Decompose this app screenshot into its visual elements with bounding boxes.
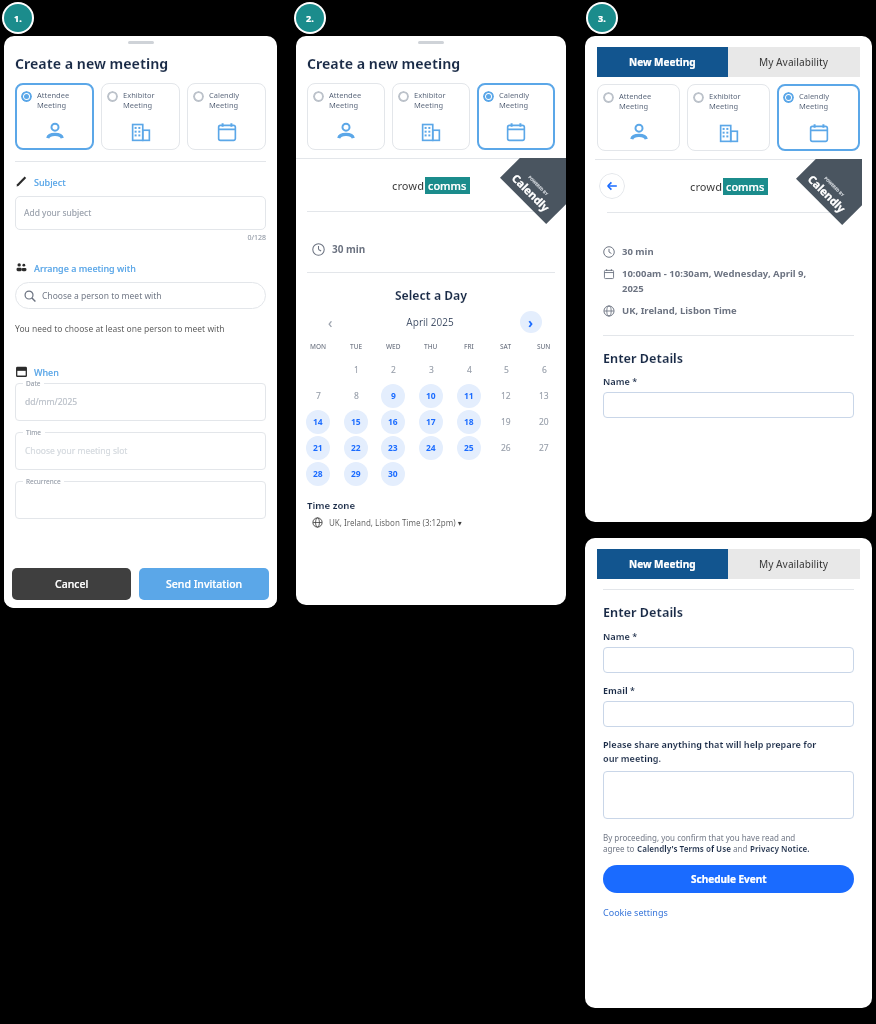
staticText: 23 — [388, 442, 398, 454]
button[interactable]: Attendee — [307, 83, 385, 150]
button[interactable]: Attendee — [15, 83, 94, 150]
button[interactable] — [603, 701, 854, 727]
button[interactable]: Choose a person to meet with — [15, 282, 266, 309]
staticText: Calendly — [805, 171, 849, 216]
button[interactable]: Exhibitor — [101, 83, 180, 150]
button[interactable]: Calendly — [187, 83, 266, 150]
button[interactable]: 24 — [419, 436, 443, 460]
button[interactable]: 1 — [344, 358, 368, 382]
button[interactable]: dd/mm/2025 — [15, 383, 266, 421]
staticText: Choose a person to meet with — [42, 290, 162, 302]
staticText: New Meeting — [629, 557, 696, 571]
staticText: 29 — [351, 468, 361, 480]
button[interactable]: 10 — [419, 384, 443, 408]
button[interactable]: 19 — [494, 410, 518, 434]
button[interactable]: My Availability — [728, 47, 860, 77]
button[interactable]: Calendly — [477, 83, 555, 150]
button[interactable]: 17 — [419, 410, 443, 434]
button[interactable]: 5 — [494, 358, 518, 382]
button[interactable]: 7 — [306, 384, 330, 408]
staticText: Meeting — [209, 100, 239, 110]
button[interactable]: 2 — [381, 358, 405, 382]
button[interactable]: Back — [599, 173, 625, 199]
button[interactable]: 23 — [381, 436, 405, 460]
button[interactable]: 21 — [306, 436, 330, 460]
staticText: 17 — [426, 416, 436, 428]
staticText: Enter Details — [603, 350, 684, 367]
button[interactable]: My Availability — [728, 549, 860, 579]
button[interactable] — [603, 392, 854, 418]
staticText: 13 — [539, 390, 549, 402]
button[interactable]: 8 — [344, 384, 368, 408]
staticText: My Availability — [759, 557, 829, 571]
button[interactable]: 13 — [532, 384, 556, 408]
button[interactable]: Schedule Event — [603, 865, 854, 893]
staticText: and — [731, 843, 750, 854]
button[interactable]: 18 — [457, 410, 481, 434]
button[interactable]: 26 — [494, 436, 518, 460]
staticText: ‹ — [328, 313, 333, 332]
staticText: Date — [26, 379, 41, 388]
button[interactable]: Add your subject — [15, 196, 266, 230]
button[interactable]: 16 — [381, 410, 405, 434]
button[interactable]: 30 — [381, 462, 405, 486]
button[interactable]: 4 — [457, 358, 481, 382]
button[interactable]: 25 — [457, 436, 481, 460]
staticText: Meeting — [619, 101, 649, 111]
button[interactable]: Choose your meeting slot — [15, 432, 266, 470]
button[interactable]: Exhibitor — [392, 83, 470, 150]
staticText: Meeting — [499, 100, 529, 110]
button[interactable]: 28 — [306, 462, 330, 486]
button[interactable] — [603, 647, 854, 673]
button[interactable]: 14 — [306, 410, 330, 434]
button[interactable]: Cookie settings — [603, 906, 668, 918]
button[interactable]: Exhibitor — [687, 84, 770, 151]
staticText: SUN — [537, 342, 551, 351]
staticText: You need to choose at least one person t… — [15, 323, 225, 335]
staticText: dd/mm/2025 — [25, 396, 78, 408]
button[interactable]: New Meeting — [597, 47, 728, 77]
staticText: 19 — [501, 416, 511, 428]
button[interactable]: 20 — [532, 410, 556, 434]
button[interactable]: 11 — [457, 384, 481, 408]
staticText: 18 — [464, 416, 474, 428]
staticText: 2. — [306, 12, 314, 24]
staticText: 24 — [426, 442, 436, 454]
staticText: 4 — [467, 364, 472, 376]
staticText: Choose your meeting slot — [25, 445, 128, 457]
button[interactable]: Cancel — [12, 568, 131, 600]
staticText: comms — [428, 178, 467, 193]
staticText: THU — [424, 342, 438, 351]
staticText: 14 — [313, 416, 323, 428]
staticText: crowd — [392, 178, 425, 193]
button[interactable] — [15, 481, 266, 519]
button[interactable]: Attendee — [597, 84, 680, 151]
button[interactable]: 12 — [494, 384, 518, 408]
staticText: Exhibitor — [123, 90, 155, 100]
button[interactable]: Next month — [520, 311, 542, 333]
button[interactable]: 6 — [532, 358, 556, 382]
button[interactable]: New Meeting — [597, 549, 728, 579]
staticText: 20 — [539, 416, 549, 428]
button[interactable] — [603, 771, 854, 819]
staticText: Please share anything that will help pre… — [603, 738, 817, 765]
staticText: Name * — [603, 375, 638, 387]
button[interactable]: 27 — [532, 436, 556, 460]
button[interactable]: Previous month — [320, 312, 340, 332]
staticText: crowd — [690, 179, 723, 194]
staticText: Meeting — [329, 100, 359, 110]
button[interactable]: 9 — [381, 384, 405, 408]
staticText: Add your subject — [24, 207, 92, 219]
staticText: › — [528, 313, 534, 332]
button[interactable]: 29 — [344, 462, 368, 486]
staticText: WED — [386, 342, 401, 351]
button[interactable]: 3 — [419, 358, 443, 382]
staticText: 5 — [504, 364, 509, 376]
button[interactable]: 22 — [344, 436, 368, 460]
staticText: FRI — [464, 342, 474, 351]
button[interactable]: Calendly — [777, 84, 860, 151]
staticText: Time zone — [307, 499, 356, 512]
button[interactable]: Send Invitation — [139, 568, 269, 600]
button[interactable]: 15 — [344, 410, 368, 434]
staticText: 10:00am - 10:30am, Wednesday, April 9, 2… — [622, 267, 807, 295]
